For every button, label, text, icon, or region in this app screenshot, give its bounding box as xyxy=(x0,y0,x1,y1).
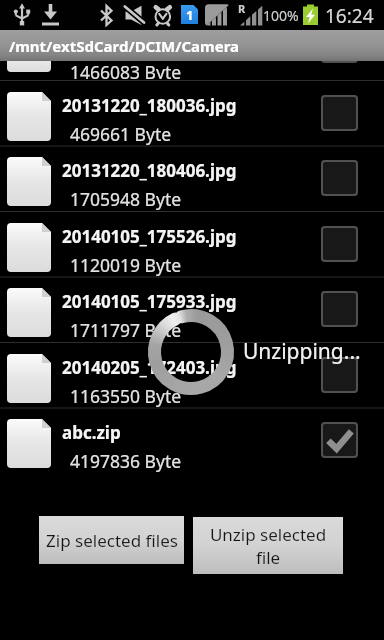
button[interactable]: 20140205_172403.jpg xyxy=(0,343,384,407)
staticText: abc.zip xyxy=(62,421,121,444)
button[interactable]: abc.zip xyxy=(0,408,384,472)
staticText: 100% xyxy=(263,6,299,25)
staticText: /mnt/extSdCard/DCIM/Camera xyxy=(9,36,240,56)
staticText: 20140205_172403.jpg xyxy=(62,356,237,379)
staticText: 1120019 Byte xyxy=(70,253,182,277)
button[interactable]: Zip selected files xyxy=(39,516,184,564)
button[interactable]: 20140105_175526.jpg xyxy=(0,212,384,276)
button[interactable]: Select file xyxy=(321,357,358,393)
staticText: 469661 Byte xyxy=(70,122,172,146)
staticText: Unzipping... xyxy=(243,337,361,366)
staticText: 1466083 Byte xyxy=(70,61,182,79)
button[interactable]: Select file xyxy=(321,95,358,131)
staticText: 1705948 Byte xyxy=(70,187,182,211)
staticText: 20140105_175933.jpg xyxy=(62,290,237,313)
staticText: R xyxy=(238,1,246,16)
button[interactable]: 20131220_180406.jpg xyxy=(0,146,384,210)
button[interactable]: 20131220_180036.jpg xyxy=(0,81,384,145)
staticText: 16:24 xyxy=(325,3,374,29)
button[interactable]: Unzip selected file xyxy=(193,517,343,574)
button[interactable]: 20140105_175933.jpg xyxy=(0,277,384,341)
button[interactable]: Select file xyxy=(321,160,358,196)
staticText: 1163550 Byte xyxy=(70,384,182,408)
staticText: 20140105_175526.jpg xyxy=(62,225,237,248)
button[interactable]: /mnt/extSdCard/DCIM/Camera xyxy=(0,30,384,61)
staticText: 20131220_180036.jpg xyxy=(62,94,237,117)
staticText: Unzip selected file xyxy=(209,523,327,569)
staticText: 1 xyxy=(186,6,194,24)
staticText: Zip selected files xyxy=(46,529,178,552)
staticText: 20131220_180406.jpg xyxy=(62,159,237,182)
button[interactable]: Select file xyxy=(321,226,358,262)
button[interactable]: Select file xyxy=(321,422,358,458)
staticText: 1711797 Byte xyxy=(70,318,182,342)
staticText: 4197836 Byte xyxy=(70,449,182,473)
button[interactable]: Select file xyxy=(321,291,358,327)
button[interactable]: 1466083 Byte xyxy=(0,61,384,80)
